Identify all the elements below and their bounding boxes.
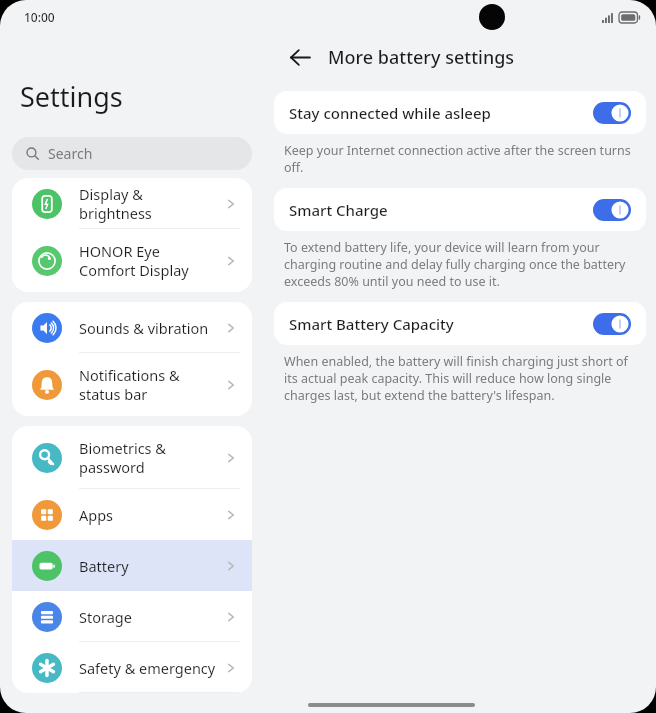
button[interactable]: Apps: [12, 489, 252, 540]
button[interactable]: HONOR Eye Comfort Display: [12, 229, 252, 292]
staticText: Display & brightness: [79, 184, 216, 223]
button[interactable]: Display & brightness: [12, 178, 252, 229]
staticText: Sounds & vibration: [79, 318, 216, 338]
staticText: Storage: [79, 607, 216, 627]
staticText: Notifications & status bar: [79, 365, 216, 404]
staticText: Battery: [79, 556, 216, 576]
staticText: Smart Battery Capacity: [289, 314, 593, 334]
staticText: HONOR Eye Comfort Display: [79, 241, 216, 280]
button[interactable]: Safety & emergency: [12, 642, 252, 693]
button[interactable]: Smart Battery Capacity: [274, 302, 646, 345]
staticText: Stay connected while asleep: [289, 103, 593, 123]
staticText: Keep your Internet connection active aft…: [284, 142, 638, 176]
button[interactable]: Stay connected while asleep: [274, 91, 646, 134]
staticText: Settings: [20, 78, 123, 115]
staticText: To extend battery life, your device will…: [284, 239, 638, 290]
staticText: When enabled, the battery will finish ch…: [284, 353, 638, 404]
button[interactable]: Smart Charge: [274, 188, 646, 231]
staticText: 10:00: [24, 9, 55, 25]
button[interactable]: Battery: [12, 540, 252, 591]
button[interactable]: Notifications & status bar: [12, 353, 252, 416]
staticText: Search: [48, 144, 93, 163]
staticText: Biometrics & password: [79, 438, 216, 477]
button[interactable]: Back: [282, 39, 318, 75]
button[interactable]: Sounds & vibration: [12, 302, 252, 353]
staticText: Safety & emergency: [79, 658, 216, 678]
button[interactable]: Biometrics & password: [12, 426, 252, 489]
button[interactable]: Search: [12, 137, 252, 170]
staticText: Apps: [79, 505, 216, 525]
staticText: More battery settings: [328, 45, 515, 70]
staticText: Smart Charge: [289, 200, 593, 220]
button[interactable]: Storage: [12, 591, 252, 642]
